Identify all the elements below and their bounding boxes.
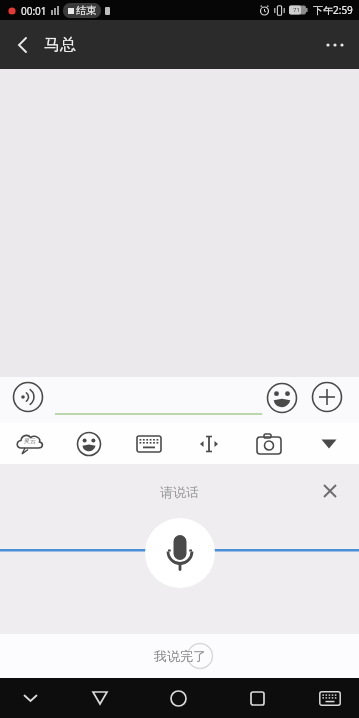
staticText: 请说话 bbox=[160, 484, 199, 500]
staticText: 00:01 bbox=[21, 4, 47, 18]
staticText: 71 bbox=[293, 6, 300, 14]
staticText: 我说完了 bbox=[154, 648, 206, 664]
button[interactable] bbox=[119, 423, 179, 464]
button[interactable] bbox=[311, 381, 343, 413]
button[interactable] bbox=[12, 381, 44, 413]
button[interactable] bbox=[237, 678, 277, 718]
staticText: 结束 bbox=[76, 4, 96, 17]
button[interactable] bbox=[266, 382, 298, 414]
button[interactable] bbox=[179, 423, 239, 464]
button[interactable] bbox=[299, 423, 359, 464]
button[interactable] bbox=[311, 20, 359, 69]
button[interactable] bbox=[239, 423, 299, 464]
staticText: 马总 bbox=[44, 35, 76, 55]
button[interactable] bbox=[310, 678, 350, 718]
button[interactable] bbox=[59, 423, 119, 464]
button[interactable] bbox=[10, 678, 50, 718]
button[interactable] bbox=[0, 20, 44, 69]
button[interactable] bbox=[158, 678, 198, 718]
button[interactable]: 灵云 bbox=[0, 423, 59, 464]
button[interactable] bbox=[145, 518, 215, 588]
staticText: 下午2:59 bbox=[313, 3, 353, 17]
button[interactable] bbox=[80, 678, 120, 718]
button[interactable]: 我说完了 bbox=[0, 634, 359, 678]
staticText: 灵云 bbox=[24, 437, 36, 445]
button[interactable] bbox=[315, 476, 345, 506]
button[interactable]: 结束 bbox=[63, 3, 101, 18]
